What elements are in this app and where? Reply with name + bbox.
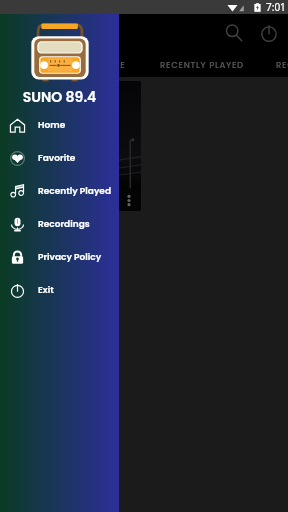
button[interactable]: Search (217, 16, 251, 50)
staticText: Exit (38, 284, 54, 297)
staticText: SUNO 89.4 (0, 87, 119, 107)
staticText: RECORDINGS (276, 59, 288, 71)
button[interactable]: Power off (252, 16, 286, 50)
button[interactable]: Home (0, 109, 119, 142)
button[interactable]: HOME (0, 52, 62, 77)
button[interactable]: RECENTLY PLAYED (143, 52, 260, 77)
button[interactable]: Favorite (0, 142, 119, 175)
staticText: Recordings (38, 218, 90, 231)
staticText: Favorite (38, 152, 76, 165)
button[interactable]: FAVORITE (62, 52, 143, 77)
staticText: HOME (8, 59, 36, 71)
button[interactable]: Privacy Policy (0, 241, 119, 274)
staticText: Recently Played (38, 185, 111, 198)
staticText: Privacy Policy (38, 251, 102, 264)
button[interactable]: Recently Played (0, 175, 119, 208)
staticText: RECENTLY PLAYED (160, 59, 244, 71)
button[interactable]: More options (123, 191, 135, 209)
button[interactable]: RECORDINGS (260, 52, 288, 77)
button[interactable]: Exit (0, 274, 119, 307)
staticText: 7:01 (266, 0, 286, 14)
button[interactable]: More options (16, 81, 141, 211)
staticText: FAVORITE (80, 59, 126, 71)
button[interactable] (0, 0, 288, 512)
button[interactable]: Recordings (0, 208, 119, 241)
staticText: Home (38, 119, 66, 132)
